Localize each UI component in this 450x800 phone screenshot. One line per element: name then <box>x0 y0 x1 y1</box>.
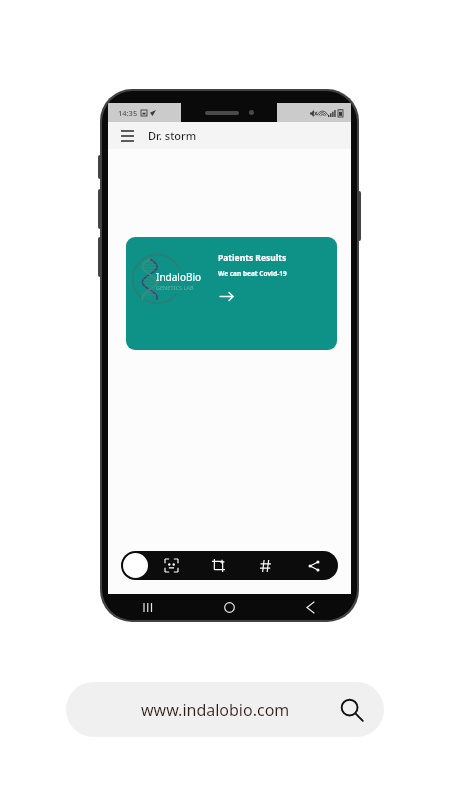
button[interactable]: IndaloBio <box>126 237 337 350</box>
staticText: IndaloBio <box>156 270 202 284</box>
staticText: 14:35 <box>118 108 138 118</box>
button[interactable]: Menu <box>117 126 137 146</box>
staticText: GENETICS LAB <box>156 284 194 291</box>
button[interactable]: Search <box>338 696 366 724</box>
button[interactable]: Recents <box>108 594 189 620</box>
button[interactable]: www.indalobio.com <box>66 682 384 737</box>
staticText: Dr. storm <box>148 128 197 143</box>
button[interactable]: Back <box>270 594 351 620</box>
button[interactable]: Home <box>123 553 148 578</box>
staticText: Patients Results <box>218 252 287 264</box>
button[interactable]: Open <box>218 288 234 304</box>
staticText: www.indalobio.com <box>141 699 290 721</box>
button[interactable]: Tags <box>242 551 290 580</box>
button[interactable]: Share <box>290 551 338 580</box>
staticText: We can beat Covid-19 <box>218 269 287 278</box>
button[interactable]: Crop <box>195 551 242 580</box>
button[interactable]: Scan <box>148 551 195 580</box>
button[interactable]: Home <box>189 594 270 620</box>
